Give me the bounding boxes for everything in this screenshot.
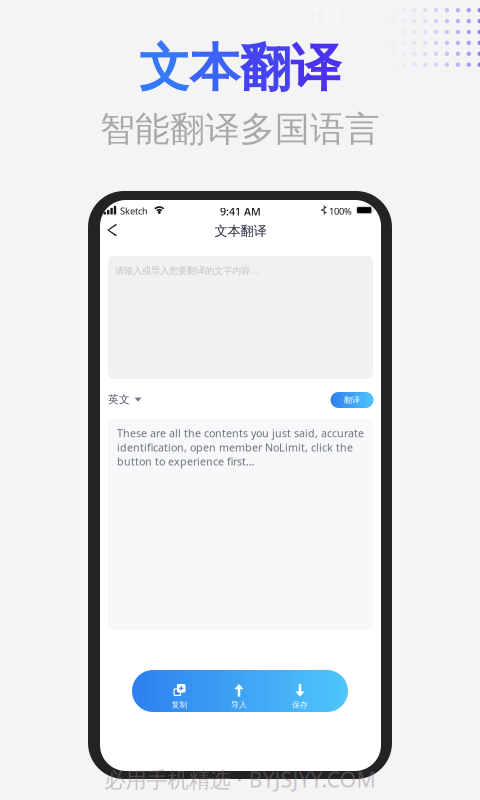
staticText: 本	[189, 37, 240, 99]
staticText: 保存	[292, 700, 308, 710]
staticText: 复制	[171, 700, 187, 710]
staticText: 英文	[108, 393, 130, 406]
staticText: 文本翻译	[214, 223, 266, 239]
staticText: 翻	[240, 37, 291, 99]
staticText: 文	[139, 37, 190, 99]
button[interactable]: 翻译	[330, 392, 373, 408]
staticText: 导入	[231, 700, 247, 710]
staticText: 100%	[329, 205, 352, 217]
staticText: 必用手机精选 · BYJSJYY.COM	[104, 765, 375, 793]
button[interactable]: 英文	[108, 391, 156, 409]
staticText: Sketch	[120, 205, 148, 217]
staticText: 智能翻译多国语言	[100, 108, 380, 151]
button[interactable]: 复制	[149, 670, 209, 712]
button[interactable]: Back	[106, 220, 130, 242]
staticText: 请输入或导入您要翻译的文字内容...	[115, 264, 259, 276]
staticText: 译	[290, 37, 341, 99]
staticText: These are all the contents you just said…	[117, 426, 364, 468]
button[interactable]: 导入	[209, 670, 269, 712]
staticText: 9:41 AM	[220, 204, 261, 219]
button[interactable]: 保存	[270, 670, 330, 712]
staticText: 翻译	[344, 395, 360, 405]
